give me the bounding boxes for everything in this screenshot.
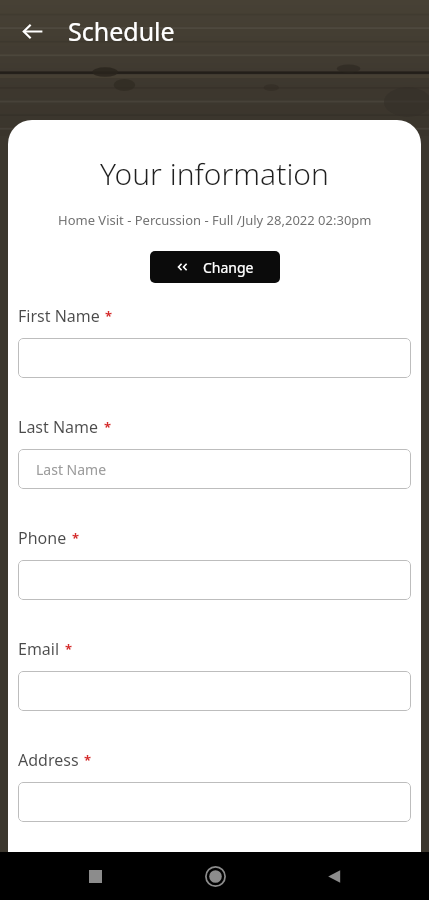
- staticText: Last Name: [36, 460, 107, 479]
- button[interactable]: Back: [10, 9, 54, 53]
- staticText: Schedule: [68, 14, 175, 48]
- button[interactable]: Back: [310, 852, 358, 900]
- staticText: *: [84, 751, 92, 769]
- button[interactable]: Home: [191, 852, 239, 900]
- staticText: Address: [18, 749, 79, 771]
- button[interactable]: [18, 338, 411, 378]
- button[interactable]: Last Name: [18, 449, 411, 489]
- staticText: *: [105, 307, 113, 325]
- staticText: *: [104, 418, 112, 436]
- button[interactable]: [18, 671, 411, 711]
- staticText: First Name: [18, 305, 100, 327]
- staticText: Email: [18, 638, 60, 660]
- staticText: Home Visit - Percussion - Full /July 28,…: [58, 211, 372, 229]
- button[interactable]: Recent apps: [71, 852, 119, 900]
- staticText: *: [72, 529, 80, 547]
- button[interactable]: Change: [150, 251, 280, 283]
- staticText: Last Name: [18, 416, 99, 438]
- staticText: *: [65, 640, 73, 658]
- button[interactable]: [18, 560, 411, 600]
- staticText: Phone: [18, 527, 67, 549]
- staticText: Change: [203, 258, 254, 277]
- staticText: Your information: [100, 153, 329, 194]
- button[interactable]: [18, 782, 411, 822]
